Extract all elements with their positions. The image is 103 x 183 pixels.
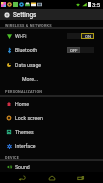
button[interactable]: Wi-Fi xyxy=(0,29,103,43)
button[interactable]: Themes xyxy=(0,125,103,139)
button[interactable]: Home xyxy=(46,172,58,183)
button[interactable]: Back xyxy=(16,172,28,183)
staticText: WIRELESS & NETWORKS xyxy=(5,23,52,27)
staticText: Data usage xyxy=(15,62,42,68)
staticText: Interface xyxy=(15,143,36,149)
button[interactable]: Home xyxy=(0,97,103,111)
button[interactable]: Recent apps xyxy=(75,172,87,183)
button[interactable]: More... xyxy=(0,72,103,86)
staticText: PERSONALIZATION xyxy=(5,89,43,93)
staticText: OFF xyxy=(70,48,78,53)
button[interactable]: Lock screen xyxy=(0,111,103,125)
staticText: Settings xyxy=(13,11,37,19)
staticText: 3:5 xyxy=(92,1,101,8)
staticText: Bluetooth xyxy=(15,47,38,53)
staticText: DEVICE xyxy=(5,155,20,159)
button[interactable]: Interface xyxy=(0,139,103,153)
staticText: Themes xyxy=(15,129,34,135)
button[interactable]: Sound xyxy=(0,160,103,174)
staticText: Sound xyxy=(15,164,30,170)
staticText: ON xyxy=(85,34,91,39)
staticText: More... xyxy=(22,76,39,82)
button[interactable]: Bluetooth xyxy=(0,43,103,57)
button[interactable]: Data usage xyxy=(0,58,103,72)
staticText: Lock screen xyxy=(15,115,43,121)
staticText: Home xyxy=(15,101,29,107)
staticText: Wi-Fi xyxy=(15,33,27,39)
